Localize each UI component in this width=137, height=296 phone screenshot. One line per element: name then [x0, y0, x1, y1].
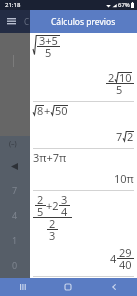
button[interactable]: 2 [30, 190, 137, 276]
staticText: 3 [49, 228, 56, 243]
button[interactable]: 3+5 [30, 33, 137, 101]
staticText: Cálculos previos [51, 16, 116, 28]
button[interactable]: Back [91, 278, 137, 296]
staticText: 67% [118, 1, 130, 9]
staticText: 10 [119, 70, 132, 85]
button[interactable]: Recents [0, 278, 45, 296]
staticText: 1 [12, 234, 18, 246]
button[interactable]: Cálculos previos [30, 10, 137, 33]
staticText: 3 [61, 192, 68, 207]
staticText: 4 [12, 209, 18, 221]
staticText: 2 [37, 192, 44, 207]
staticText: 21:18 [5, 1, 21, 9]
staticText: 3+5 [39, 33, 58, 48]
staticText: 4 [110, 251, 117, 266]
staticText: + [44, 103, 51, 118]
staticText: 3π+7π [33, 150, 67, 165]
staticText: 8 [37, 103, 44, 118]
staticText: (–) [9, 139, 17, 149]
staticText: 2 [108, 70, 115, 85]
staticText: 50 [55, 103, 68, 118]
button[interactable]: 8 [30, 101, 137, 148]
staticText: 10π [114, 171, 134, 186]
staticText: 2 [49, 216, 56, 231]
other: Menu [7, 18, 16, 24]
staticText: 4 [61, 204, 68, 219]
staticText: 5 [116, 82, 123, 97]
staticText: 2 [127, 129, 134, 144]
staticText: 0 [12, 259, 18, 271]
staticText: 5 [37, 204, 44, 219]
staticText: 29 [119, 245, 132, 260]
staticText: 7 [12, 184, 18, 196]
staticText: +2 [46, 198, 59, 213]
staticText: 7 [116, 129, 123, 144]
button[interactable]: Home [45, 278, 91, 296]
button[interactable]: 3π+7π [30, 148, 137, 190]
staticText: 5 [45, 45, 52, 60]
staticText: C [24, 16, 30, 27]
staticText: 40 [119, 257, 132, 272]
